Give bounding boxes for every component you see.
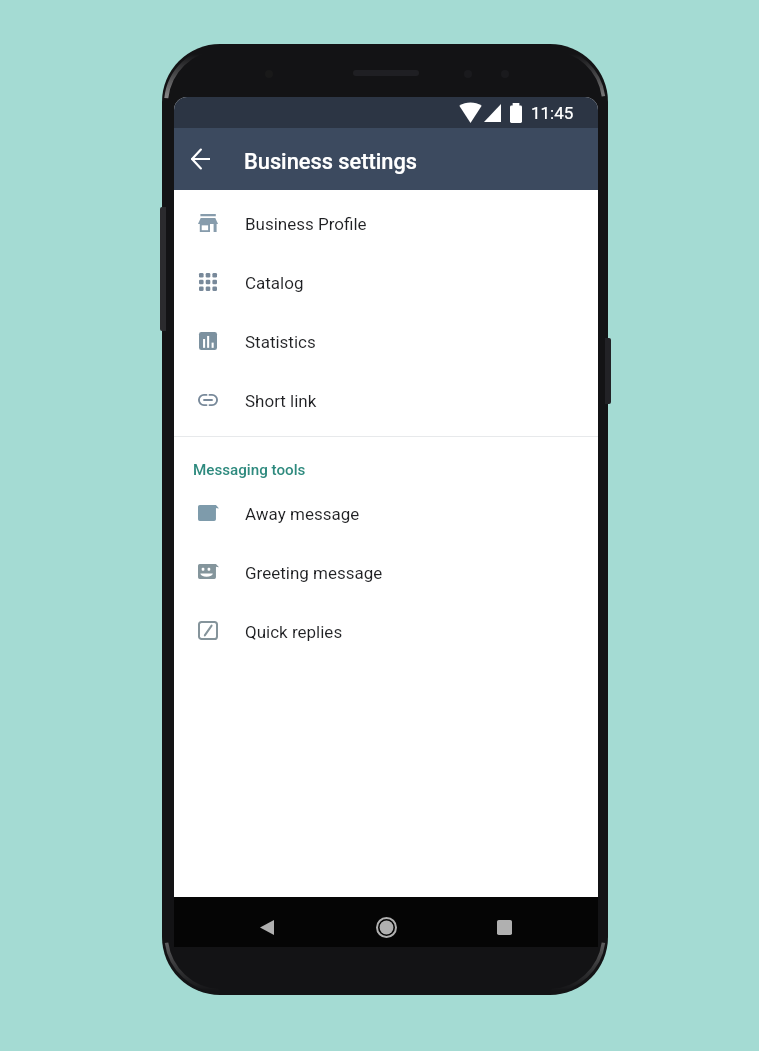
staticText: Quick replies	[245, 622, 343, 642]
button[interactable]: Greeting message	[174, 543, 598, 602]
staticText: Messaging tools	[193, 461, 306, 479]
staticText: Business settings	[244, 149, 417, 175]
button[interactable]: Away message	[174, 484, 598, 543]
staticText: Statistics	[245, 332, 316, 352]
button[interactable]: Quick replies	[174, 602, 598, 661]
staticText: Away message	[245, 504, 360, 524]
staticText: Short link	[245, 391, 317, 411]
staticText: Business Profile	[245, 214, 367, 234]
button[interactable]: Business Profile	[174, 194, 598, 253]
staticText: 11:45	[531, 103, 574, 123]
button[interactable]: Home	[367, 908, 405, 946]
button[interactable]: Short link	[174, 371, 598, 430]
button[interactable]: Back	[248, 908, 286, 946]
staticText: Catalog	[245, 273, 304, 293]
button[interactable]: Catalog	[174, 253, 598, 312]
staticText: Greeting message	[245, 563, 383, 583]
button[interactable]: Back	[177, 136, 223, 182]
button[interactable]: Recent apps	[485, 908, 523, 946]
button[interactable]: Statistics	[174, 312, 598, 371]
